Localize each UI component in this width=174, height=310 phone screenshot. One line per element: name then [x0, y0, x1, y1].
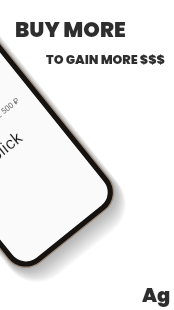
staticText: BUY MORE: [15, 15, 126, 44]
staticText: Ag: [142, 282, 171, 309]
staticText: TO GAIN MORE $$$: [46, 51, 165, 68]
